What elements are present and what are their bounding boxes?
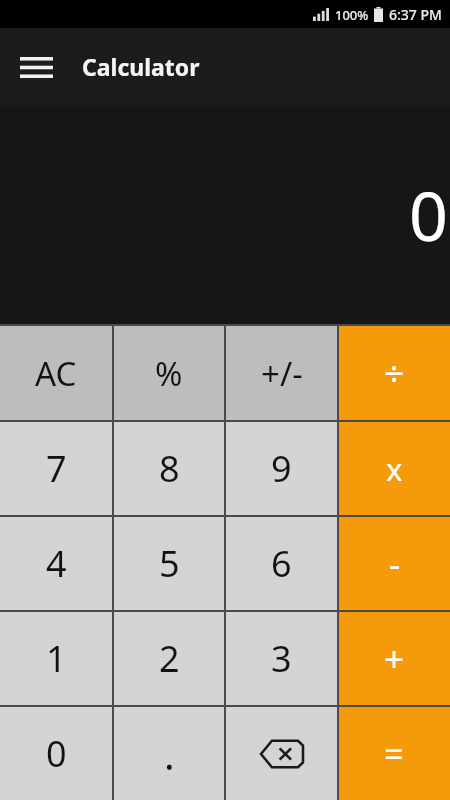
staticText: 3 [271,634,292,683]
button[interactable]: +/- [226,326,337,420]
staticText: 7 [46,444,67,493]
staticText: ÷ [384,349,405,397]
button[interactable]: = [339,707,450,800]
button[interactable]: 4 [0,517,112,610]
staticText: 6:37 PM [389,5,442,24]
staticText: % [155,351,183,396]
staticText: 5 [159,539,180,588]
staticText: - [389,540,401,588]
button[interactable]: 8 [114,422,224,515]
staticText: 0 [46,729,67,778]
button[interactable]: % [114,326,224,420]
button[interactable]: 2 [114,612,224,705]
staticText: +/- [261,351,303,396]
button[interactable]: 9 [226,422,337,515]
staticText: AC [35,351,77,396]
button[interactable]: 0 [0,707,112,800]
staticText: Calculator [82,51,200,82]
button[interactable]: AC [0,326,112,420]
staticText: x [386,448,403,490]
button[interactable]: 7 [0,422,112,515]
staticText: 1 [46,634,67,683]
button[interactable]: Backspace [226,707,337,800]
button[interactable]: . [114,707,224,800]
staticText: + [384,635,405,683]
button[interactable]: 5 [114,517,224,610]
staticText: 9 [271,444,292,493]
staticText: 6 [271,539,292,588]
button[interactable]: - [339,517,450,610]
button[interactable]: x [339,422,450,515]
staticText: 4 [46,539,67,588]
staticText: = [384,730,405,778]
staticText: 0 [409,168,448,261]
staticText: 2 [159,634,180,683]
staticText: 8 [159,444,180,493]
button[interactable]: + [339,612,450,705]
button[interactable]: 6 [226,517,337,610]
other: Backspace [261,739,303,769]
staticText: . [164,727,175,781]
button[interactable]: 3 [226,612,337,705]
staticText: 100% [335,6,369,24]
button[interactable]: 1 [0,612,112,705]
button[interactable]: Open navigation menu [10,41,62,93]
button[interactable]: ÷ [339,326,450,420]
